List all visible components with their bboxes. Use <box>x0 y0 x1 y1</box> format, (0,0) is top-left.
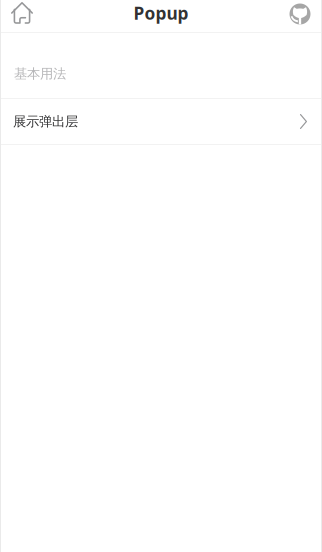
staticText: 展示弹出层 <box>13 113 78 130</box>
button[interactable]: Home <box>6 0 38 26</box>
staticText: 基本用法 <box>14 66 66 82</box>
button[interactable]: 展示弹出层 <box>0 99 322 144</box>
button[interactable]: GitHub <box>284 0 316 26</box>
staticText: Popup <box>133 1 188 24</box>
